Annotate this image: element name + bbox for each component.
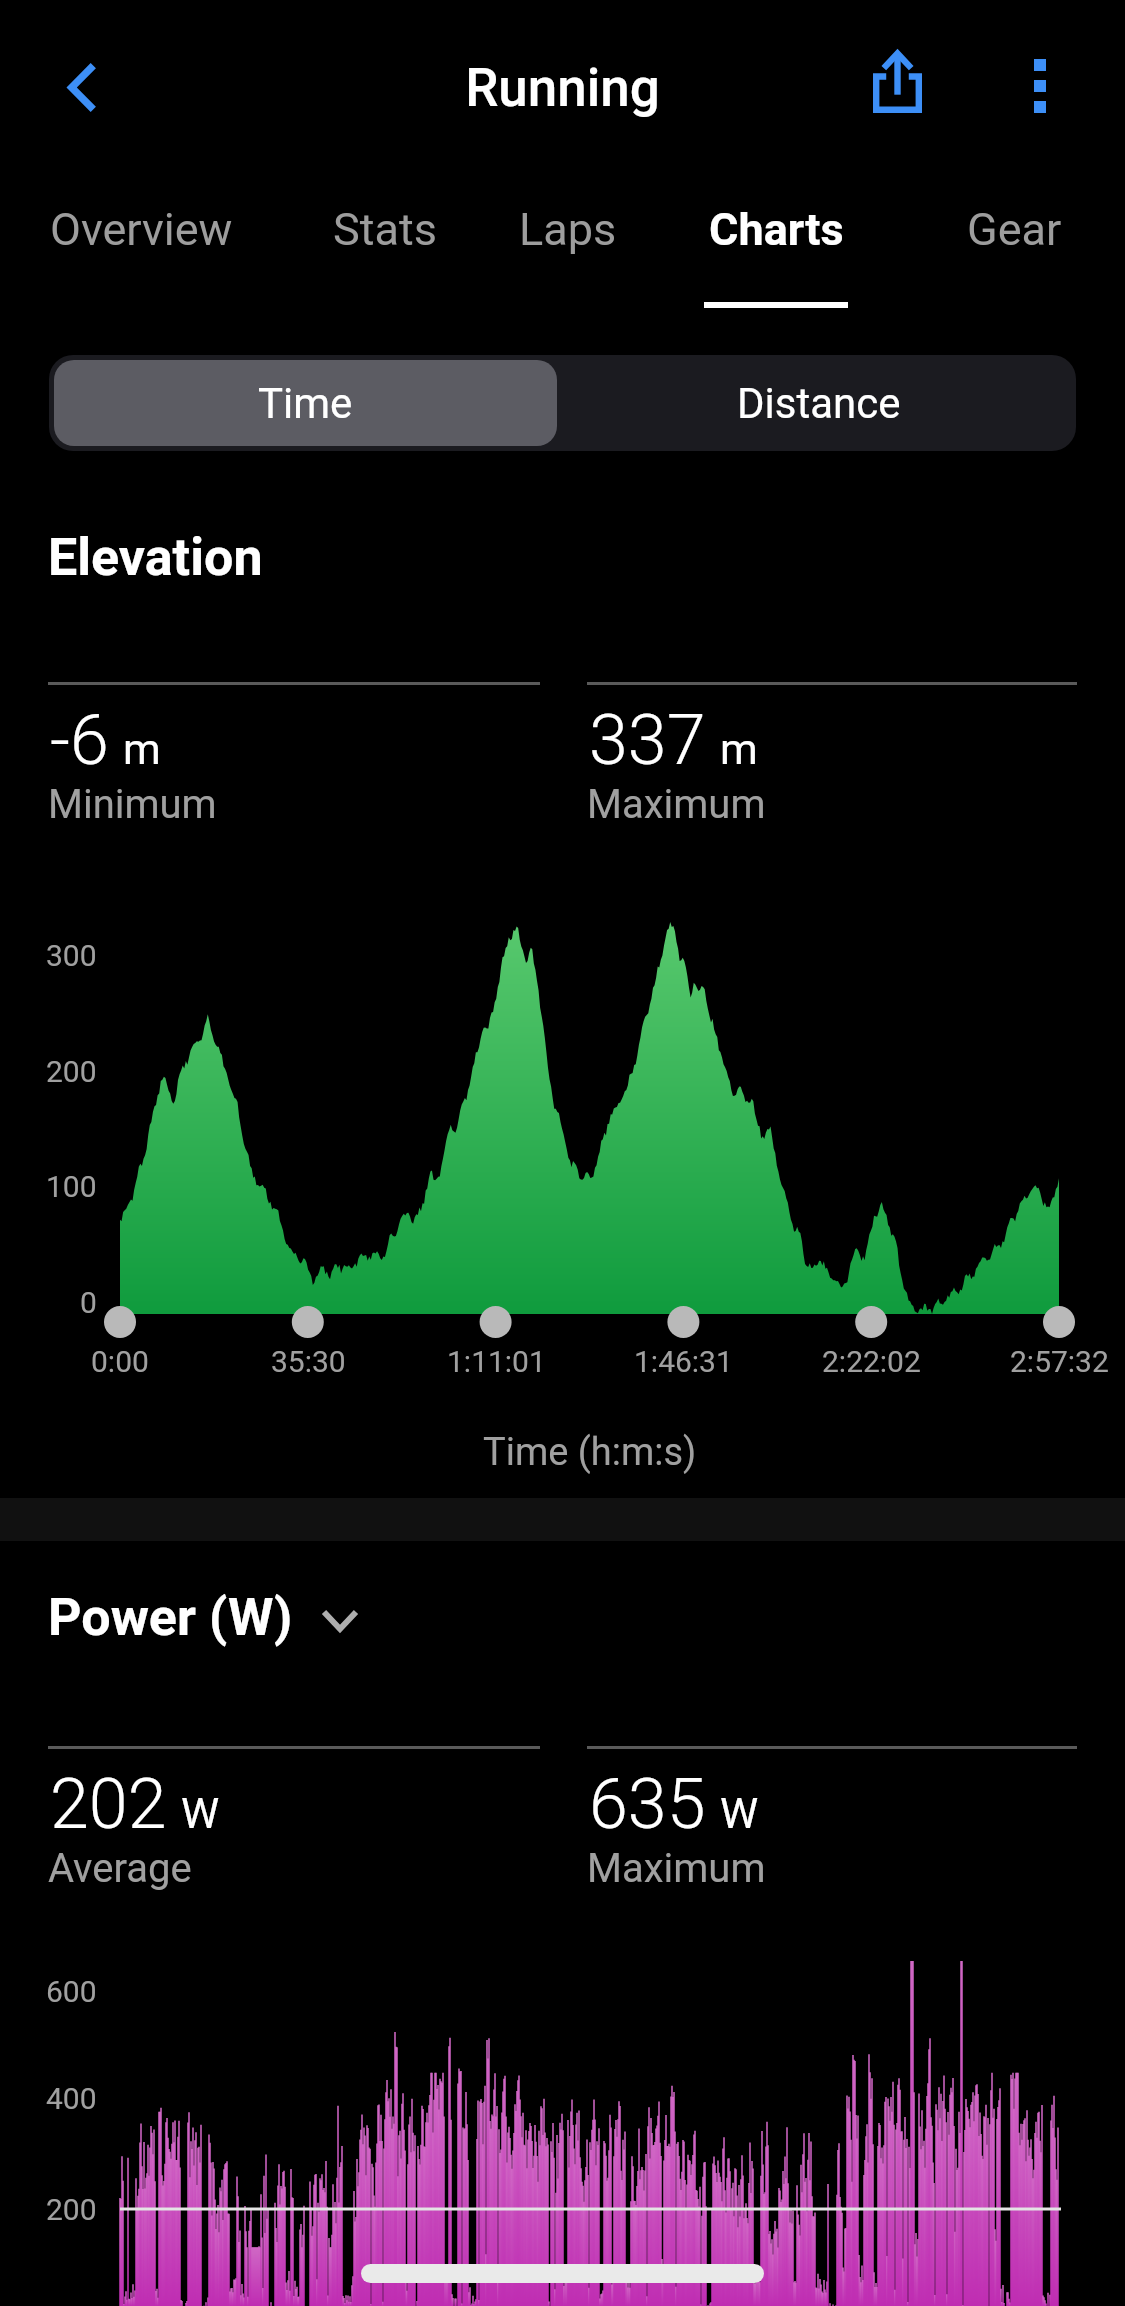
staticText: 35:30 <box>271 1344 346 1379</box>
staticText: 600 <box>46 1974 97 2009</box>
button[interactable]: Overview <box>26 176 256 308</box>
staticText: Time (h:m:s) <box>483 1430 697 1475</box>
button[interactable]: More options <box>990 33 1090 138</box>
staticText: Laps <box>519 203 617 256</box>
button[interactable]: Stats <box>300 176 470 308</box>
staticText: 200 <box>46 1054 97 1089</box>
staticText: Gear <box>967 203 1062 256</box>
staticText: m <box>123 724 161 774</box>
staticText: 0 <box>80 1285 97 1320</box>
staticText: 337 <box>589 699 706 781</box>
staticText: 400 <box>46 2081 97 2116</box>
staticText: m <box>720 724 758 774</box>
staticText: 1:46:31 <box>634 1344 733 1379</box>
staticText: 0:00 <box>91 1344 149 1379</box>
staticText: W <box>720 1788 759 1838</box>
staticText: Stats <box>333 203 437 256</box>
staticText: Overview <box>50 203 233 256</box>
staticText: 1:11:01 <box>447 1344 546 1379</box>
staticText: 635 <box>589 1763 706 1845</box>
staticText: Average <box>48 1845 192 1892</box>
button[interactable]: Distance <box>562 355 1076 451</box>
staticText: Maximum <box>587 781 766 828</box>
staticText: 100 <box>46 1169 97 1204</box>
staticText: Running <box>0 57 1125 119</box>
staticText: 200 <box>46 2192 97 2227</box>
staticText: 2:22:02 <box>822 1344 921 1379</box>
staticText: Time <box>258 379 353 428</box>
staticText: 300 <box>46 938 97 973</box>
button[interactable]: Share <box>847 30 947 135</box>
staticText: -6 <box>50 699 109 781</box>
button[interactable]: Charts <box>691 176 861 308</box>
button[interactable]: Gear <box>929 176 1099 308</box>
button[interactable]: Laps <box>493 176 643 308</box>
staticText: Distance <box>737 379 901 428</box>
staticText: Power (W) <box>48 1587 293 1648</box>
staticText: Minimum <box>48 781 217 828</box>
button[interactable]: Time <box>54 360 557 446</box>
staticText: W <box>181 1788 220 1838</box>
staticText: 202 <box>50 1763 167 1845</box>
button[interactable]: Back <box>32 35 132 140</box>
staticText: Charts <box>709 203 844 256</box>
staticText: Maximum <box>587 1845 766 1892</box>
staticText: 2:57:32 <box>1010 1344 1109 1379</box>
staticText: Elevation <box>48 527 263 588</box>
